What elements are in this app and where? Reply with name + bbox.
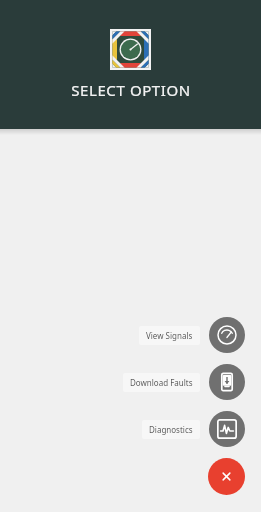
staticText: Diagnostics — [149, 424, 193, 435]
staticText: Download Faults — [130, 377, 193, 388]
button[interactable]: View Signals — [139, 317, 245, 353]
button[interactable]: Close menu — [208, 458, 245, 495]
other: Diagnostics — [209, 411, 245, 447]
other: View Signals — [209, 317, 245, 353]
other: Download Faults — [209, 364, 245, 400]
staticText: SELECT OPTION — [71, 80, 191, 100]
button[interactable]: Download Faults — [123, 364, 245, 400]
staticText: View Signals — [146, 330, 193, 341]
button[interactable]: Diagnostics — [142, 411, 245, 447]
